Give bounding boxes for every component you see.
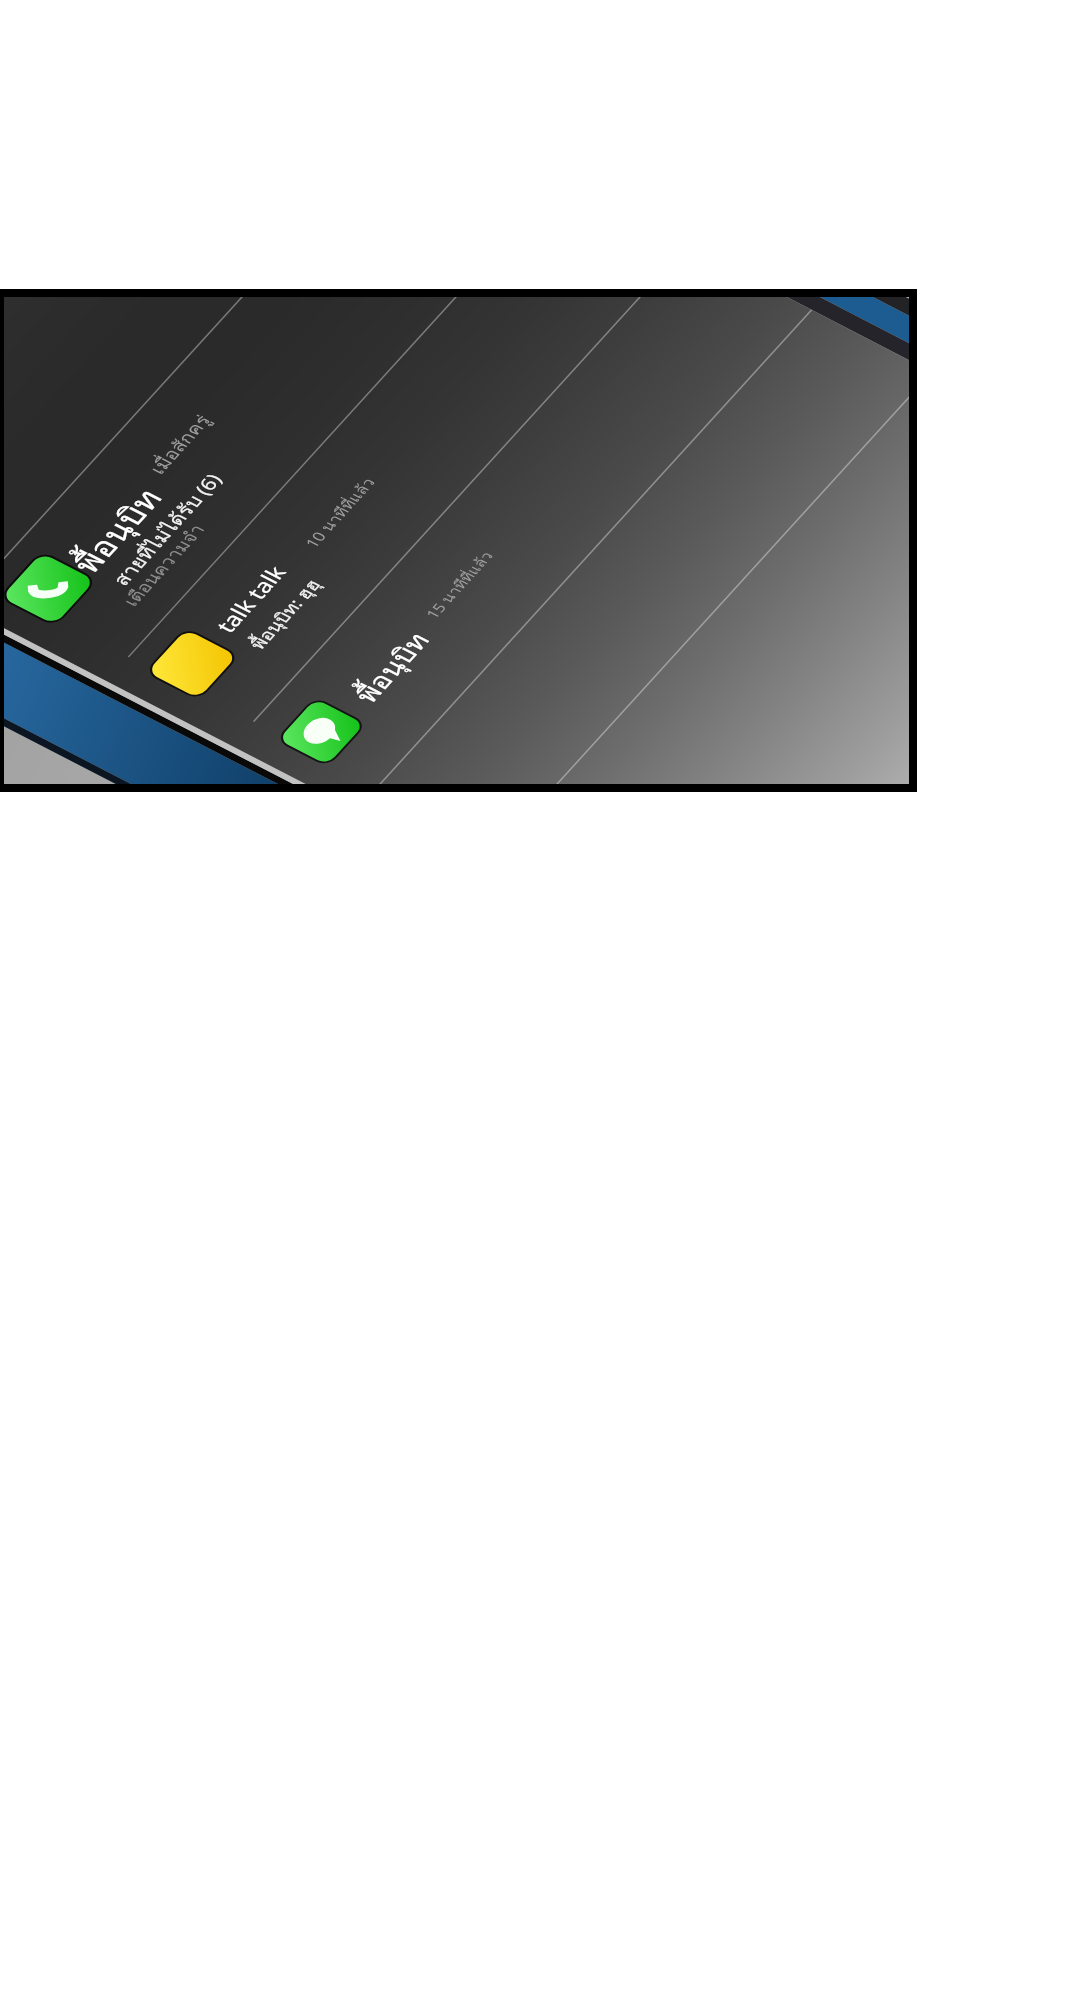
- button[interactable]: [0, 0, 1080, 2000]
